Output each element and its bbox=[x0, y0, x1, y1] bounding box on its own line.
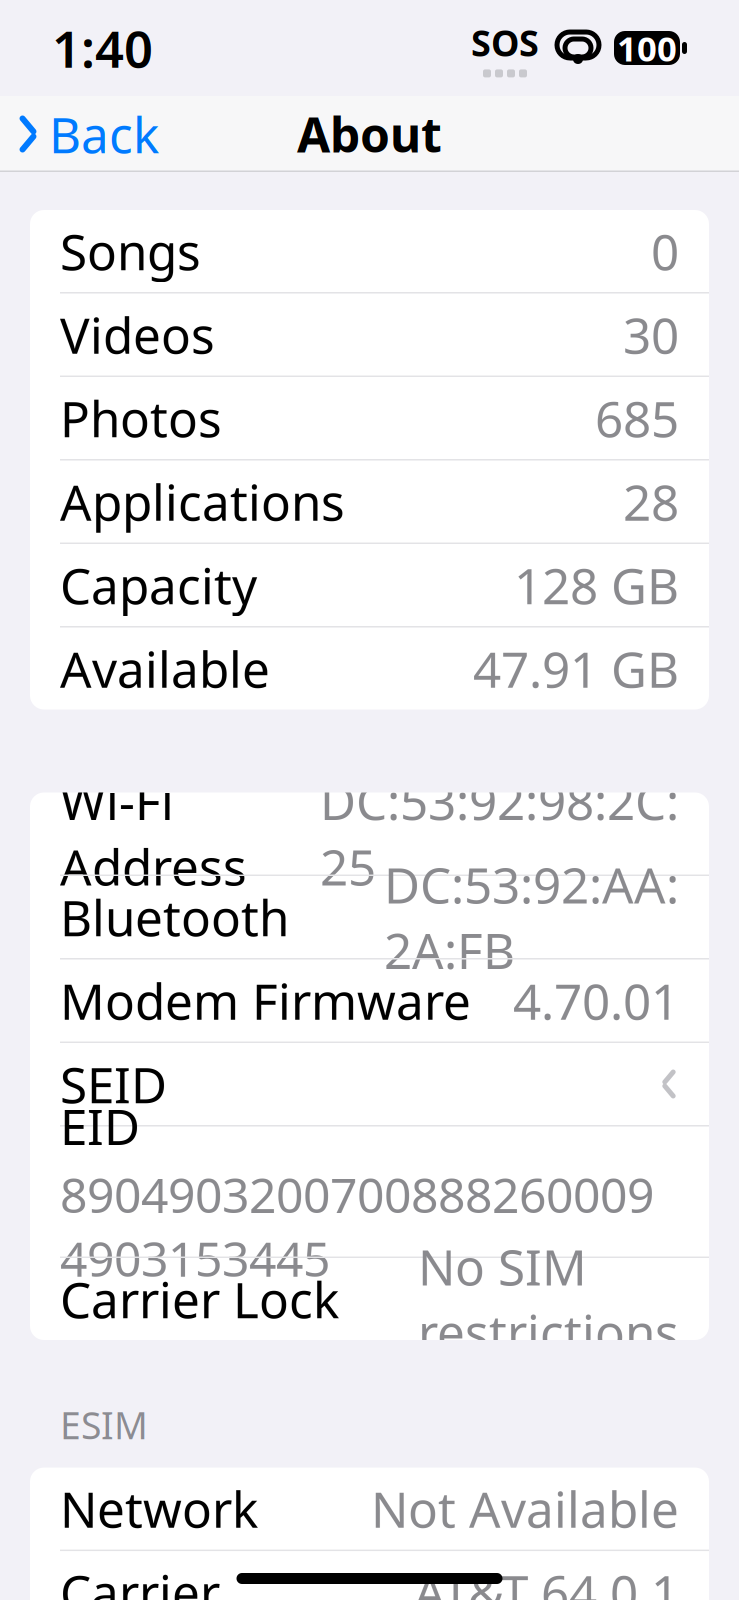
button[interactable]: Back bbox=[0, 89, 159, 179]
staticText: No SIM restrictions bbox=[418, 1233, 679, 1364]
staticText: Wi-Fi Address bbox=[60, 768, 247, 899]
staticText: SOS bbox=[471, 19, 539, 66]
staticText: DC:53:92:98:2C:25 bbox=[320, 768, 679, 899]
staticText: Songs bbox=[60, 218, 201, 284]
staticText: Not Available bbox=[371, 1476, 679, 1541]
staticText: 47.91 GB bbox=[473, 636, 679, 701]
staticText: AT&T 64.0.1 bbox=[414, 1559, 679, 1600]
button[interactable]: SEID bbox=[30, 1043, 709, 1125]
staticText: SEID bbox=[60, 1051, 167, 1117]
staticText: Videos bbox=[60, 302, 215, 367]
staticText: About bbox=[297, 102, 442, 166]
staticText: Bluetooth bbox=[60, 884, 289, 950]
staticText: Back bbox=[49, 101, 159, 167]
staticText: Available bbox=[60, 636, 270, 701]
staticText: Capacity bbox=[60, 552, 257, 618]
staticText: 100 bbox=[617, 25, 677, 71]
staticText: 89049032007008882600094903153445 bbox=[60, 1162, 654, 1290]
staticText: DC:53:92:AA:2A:FB bbox=[384, 851, 679, 982]
staticText: Carrier Lock bbox=[60, 1266, 339, 1332]
staticText: Modem Firmware bbox=[60, 968, 471, 1033]
staticText: 4.70.01 bbox=[513, 968, 679, 1033]
staticText: EID bbox=[60, 1093, 140, 1158]
staticText: 685 bbox=[595, 385, 679, 451]
staticText: 28 bbox=[623, 469, 679, 534]
staticText: 0 bbox=[651, 218, 679, 284]
staticText: Carrier bbox=[60, 1559, 220, 1600]
staticText: Network bbox=[60, 1476, 258, 1541]
staticText: ESIM bbox=[60, 1400, 148, 1450]
staticText: 30 bbox=[623, 302, 679, 367]
staticText: 128 GB bbox=[514, 552, 679, 618]
staticText: 1:40 bbox=[52, 14, 153, 82]
staticText: Applications bbox=[60, 469, 345, 534]
staticText: Photos bbox=[60, 385, 222, 451]
